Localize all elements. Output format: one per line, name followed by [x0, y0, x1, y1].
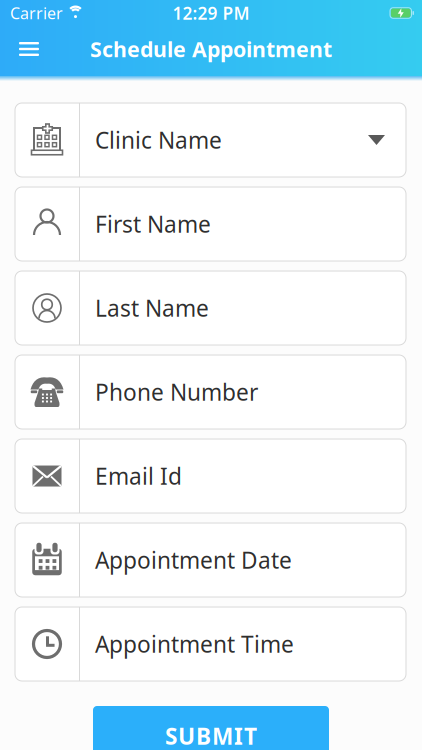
- staticText: Appointment Date: [95, 545, 292, 575]
- button[interactable]: Appointment Time: [15, 607, 406, 681]
- staticText: Carrier: [10, 2, 63, 24]
- button[interactable]: SUBMIT: [93, 706, 329, 750]
- button[interactable]: Clinic Name: [15, 103, 406, 177]
- button[interactable]: First Name: [15, 187, 406, 261]
- staticText: SUBMIT: [165, 721, 257, 750]
- staticText: Appointment Time: [95, 629, 294, 659]
- staticText: First Name: [95, 209, 211, 239]
- staticText: 12:29 PM: [172, 1, 249, 24]
- staticText: Clinic Name: [95, 125, 222, 155]
- staticText: Last Name: [95, 293, 209, 323]
- staticText: Schedule Appointment: [90, 35, 332, 63]
- button[interactable]: Menu: [0, 42, 39, 56]
- staticText: Phone Number: [95, 377, 258, 407]
- staticText: Email Id: [95, 461, 182, 491]
- button[interactable]: Appointment Date: [15, 523, 406, 597]
- button[interactable]: Email Id: [15, 439, 406, 513]
- button[interactable]: Phone Number: [15, 355, 406, 429]
- button[interactable]: Last Name: [15, 271, 406, 345]
